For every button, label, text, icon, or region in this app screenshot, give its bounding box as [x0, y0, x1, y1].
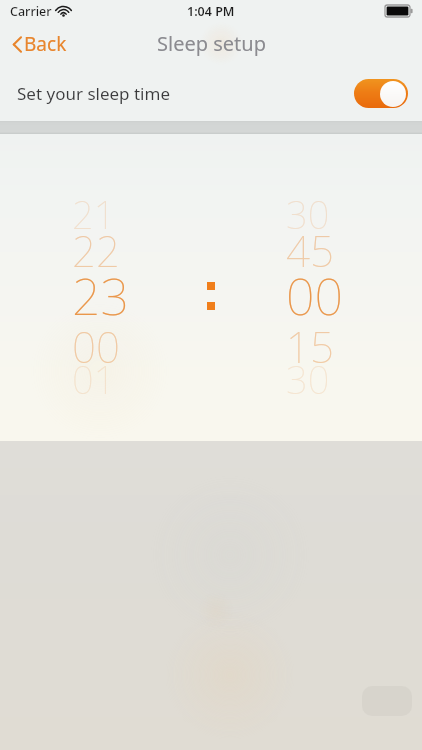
- staticText: 1:04 PM: [187, 3, 235, 20]
- staticText: 00: [286, 262, 386, 330]
- staticText: 15: [286, 318, 386, 375]
- staticText: 22: [72, 222, 164, 279]
- staticText: Carrier: [10, 3, 52, 20]
- staticText: 45: [286, 222, 386, 279]
- staticText: Back: [24, 31, 67, 57]
- button[interactable]: 21: [0, 134, 422, 441]
- staticText: Set your sleep time: [17, 82, 170, 105]
- staticText: Sleep setup: [157, 30, 266, 57]
- staticText: 30: [286, 353, 386, 405]
- staticText: 30: [286, 188, 386, 240]
- staticText: 01: [72, 353, 164, 405]
- button[interactable]: Sleep time toggle, on: [354, 79, 408, 108]
- staticText: 23: [72, 262, 164, 330]
- button[interactable]: Set your sleep time: [0, 65, 422, 121]
- staticText: 00: [72, 318, 164, 375]
- staticText: 21: [72, 188, 164, 240]
- button[interactable]: Back: [8, 27, 71, 61]
